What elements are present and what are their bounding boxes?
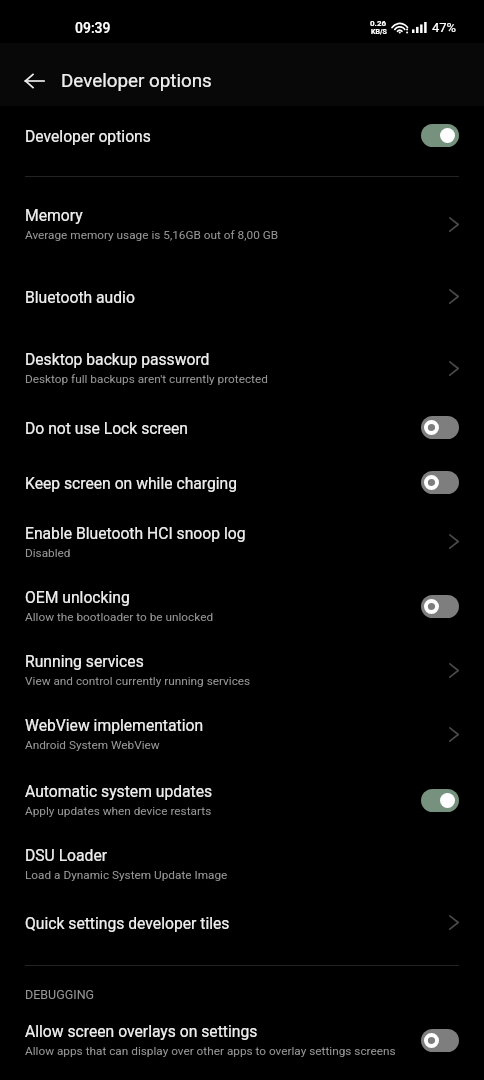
staticText: Keep screen on while charging	[25, 474, 238, 492]
staticText: DSU Loader	[25, 846, 108, 864]
button[interactable]: Do not use Lock screen	[0, 400, 484, 455]
staticText: Disabled	[25, 546, 71, 560]
staticText: Do not use Lock screen	[25, 419, 188, 437]
button[interactable]: Running services	[0, 638, 484, 702]
button[interactable]: Memory	[0, 186, 484, 262]
staticText: Quick settings developer tiles	[25, 914, 230, 932]
staticText: Enable Bluetooth HCI snoop log	[25, 524, 246, 542]
staticText: Allow the bootloader to be unlocked	[25, 610, 214, 624]
staticText: KB/S	[371, 28, 387, 36]
button[interactable]: Keep screen on while charging	[0, 455, 484, 510]
staticText: Bluetooth audio	[25, 288, 135, 306]
staticText: 09:39	[75, 20, 111, 36]
staticText: Load a Dynamic System Update Image	[25, 868, 228, 882]
button[interactable]: Automatic system updates	[0, 768, 484, 832]
staticText: Allow apps that can display over other a…	[25, 1044, 396, 1058]
button[interactable]: DSU Loader	[0, 833, 484, 895]
button[interactable]: WebView implementation	[0, 701, 484, 767]
button[interactable]: Quick settings developer tiles	[0, 895, 484, 950]
staticText: Android System WebView	[25, 738, 160, 752]
button[interactable]: Allow screen overlays on settings	[0, 1008, 484, 1072]
button[interactable]: OEM unlocking	[0, 574, 484, 638]
staticText: Automatic system updates	[25, 782, 213, 800]
staticText: Allow screen overlays on settings	[25, 1022, 258, 1040]
button[interactable]: Bluetooth audio	[0, 263, 484, 330]
staticText: DEBUGGING	[25, 987, 95, 1002]
staticText: Desktop full backups aren't currently pr…	[25, 372, 268, 386]
staticText: Apply updates when device restarts	[25, 804, 212, 818]
button[interactable]: Back	[12, 59, 56, 103]
staticText: OEM unlocking	[25, 588, 130, 606]
button[interactable]: Developer options	[0, 108, 484, 163]
staticText: Average memory usage is 5,16GB out of 8,…	[25, 228, 279, 242]
staticText: Developer options	[25, 127, 151, 145]
button[interactable]: Enable Bluetooth HCI snoop log	[0, 509, 484, 574]
staticText: WebView implementation	[25, 716, 204, 734]
staticText: Running services	[25, 652, 144, 670]
staticText: 0.26	[370, 19, 387, 28]
staticText: Desktop backup password	[25, 350, 210, 368]
staticText: Memory	[25, 206, 83, 224]
button[interactable]: Desktop backup password	[0, 336, 484, 400]
staticText: 47%	[432, 20, 457, 35]
staticText: Developer options	[61, 70, 212, 92]
staticText: View and control currently running servi…	[25, 674, 251, 688]
